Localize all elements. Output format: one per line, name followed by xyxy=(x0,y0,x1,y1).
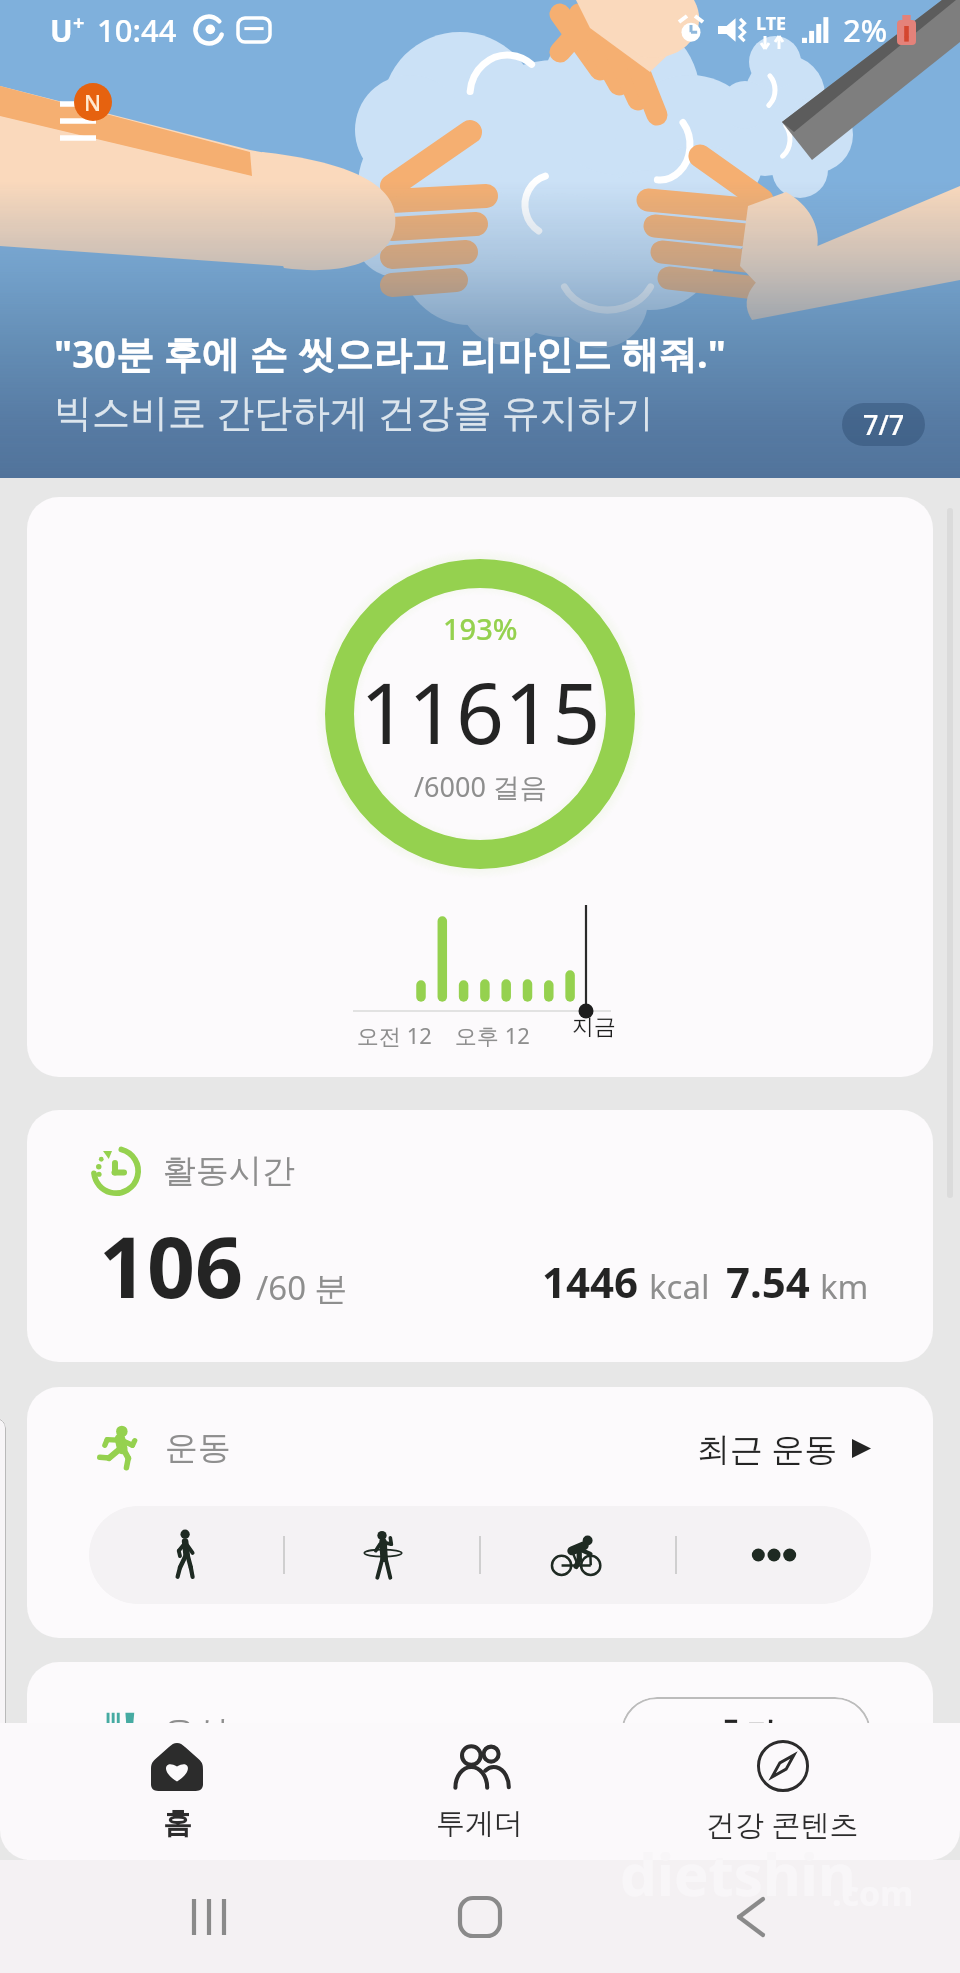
staticText: 운동 xyxy=(165,1427,231,1469)
button[interactable]: 최근 운동 xyxy=(697,1426,871,1471)
staticText: 106 xyxy=(99,1208,244,1322)
button[interactable]: Home xyxy=(344,1860,615,1973)
staticText: 1446 xyxy=(542,1253,639,1310)
button[interactable]: 추가 xyxy=(621,1697,871,1769)
staticText: 추가 xyxy=(715,1714,777,1753)
button[interactable]: Walking xyxy=(89,1506,283,1604)
button[interactable]: Recents xyxy=(74,1860,344,1973)
staticText: 투게더 xyxy=(436,1805,523,1842)
staticText: 2% xyxy=(843,9,888,51)
staticText: 7/7 xyxy=(863,406,905,443)
button[interactable]: Menu xyxy=(52,82,112,148)
staticText: 11615 xyxy=(360,654,601,768)
button[interactable]: Hula hoop xyxy=(285,1506,479,1604)
staticText: 193% xyxy=(443,609,518,648)
staticText: "30분 후에 손 씻으라고 리마인드 해줘." xyxy=(54,327,726,379)
staticText: dietshin xyxy=(620,1834,856,1913)
staticText: 건강 콘텐츠 xyxy=(706,1804,859,1844)
staticText: + xyxy=(73,9,85,36)
staticText: 7.54 xyxy=(726,1253,810,1310)
staticText: /60 분 xyxy=(256,1265,348,1310)
button[interactable]: 193% xyxy=(27,497,933,1077)
staticText: 10:44 xyxy=(97,9,177,51)
staticText: 음식 xyxy=(163,1712,229,1754)
staticText: km xyxy=(820,1264,869,1309)
button[interactable]: Back xyxy=(615,1860,886,1973)
button[interactable]: 홈 xyxy=(26,1723,328,1860)
staticText: /6000 걸음 xyxy=(414,768,547,805)
staticText: N xyxy=(84,87,102,117)
staticText: 활동시간 xyxy=(163,1150,295,1192)
staticText: 최근 운동 xyxy=(697,1426,838,1471)
button[interactable]: Cycling xyxy=(481,1506,675,1604)
staticText: 오후 12 xyxy=(455,1020,530,1050)
staticText: kcal xyxy=(649,1264,710,1309)
staticText: 홈 xyxy=(163,1805,192,1842)
button[interactable]: 투게더 xyxy=(328,1723,631,1860)
staticText: 오전 12 xyxy=(357,1020,432,1050)
staticText: U xyxy=(50,10,73,51)
button[interactable]: 건강 콘텐츠 xyxy=(631,1723,934,1860)
button[interactable]: 활동시간 xyxy=(27,1110,933,1362)
button[interactable]: More exercises xyxy=(677,1506,871,1604)
staticText: 빅스비로 간단하게 건강을 유지하기 xyxy=(54,385,654,437)
staticText: LTE xyxy=(756,11,787,36)
staticText: 지금 xyxy=(572,1013,616,1041)
